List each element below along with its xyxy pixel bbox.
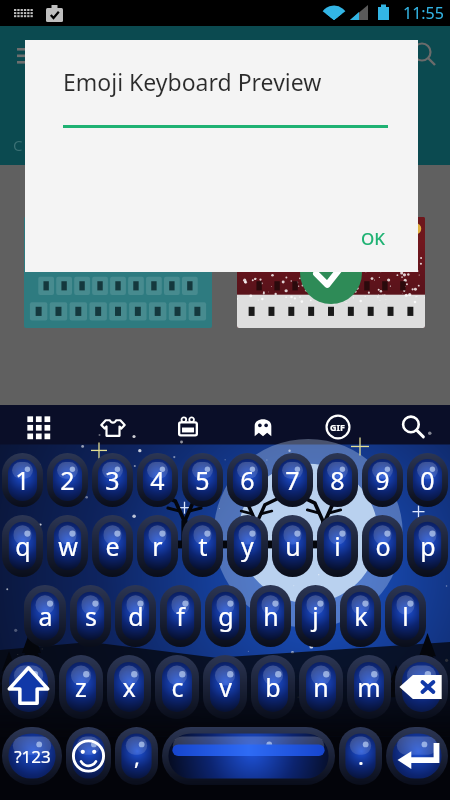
button[interactable]: Search	[410, 40, 440, 70]
staticText: 6	[240, 463, 255, 497]
staticText: g	[218, 599, 234, 633]
staticText: f	[176, 599, 185, 633]
button[interactable]: 6	[225, 449, 270, 511]
button[interactable]: m	[345, 651, 393, 723]
staticText: l	[402, 599, 409, 633]
button[interactable]: Emoji	[64, 723, 113, 789]
staticText: a	[38, 599, 53, 633]
button[interactable]: Shift	[0, 651, 57, 723]
staticText: j	[312, 599, 319, 633]
button[interactable]	[237, 217, 425, 328]
staticText: q	[15, 529, 31, 563]
staticText: C	[13, 135, 23, 155]
button[interactable]: ,	[113, 723, 160, 789]
staticText: x	[122, 670, 136, 704]
button[interactable]	[24, 217, 212, 328]
staticText: h	[263, 599, 279, 633]
staticText: 1	[15, 463, 30, 497]
staticText: 5	[195, 463, 210, 497]
button[interactable]: b	[249, 651, 297, 723]
button[interactable]: l	[383, 581, 428, 651]
button[interactable]: 5	[180, 449, 225, 511]
staticText: t	[198, 529, 208, 563]
staticText: 8	[330, 463, 345, 497]
staticText: o	[375, 529, 391, 563]
staticText: ,	[134, 741, 140, 771]
button[interactable]: d	[113, 581, 158, 651]
button[interactable]: j	[293, 581, 338, 651]
button[interactable]: 7	[270, 449, 315, 511]
button[interactable]: f	[158, 581, 203, 651]
staticText: 7	[285, 463, 300, 497]
staticText: v	[219, 670, 232, 704]
button[interactable]: Stickers	[225, 405, 300, 449]
button[interactable]: 2	[45, 449, 90, 511]
staticText: GIF	[330, 421, 345, 433]
button[interactable]: ?123	[0, 723, 64, 789]
button[interactable]: k	[338, 581, 383, 651]
staticText: 4	[150, 463, 165, 497]
button[interactable]: h	[248, 581, 293, 651]
button[interactable]: y	[225, 511, 270, 581]
button[interactable]: c	[153, 651, 201, 723]
button[interactable]: v	[201, 651, 249, 723]
button[interactable]: x	[105, 651, 153, 723]
staticText: OK	[361, 227, 386, 250]
button[interactable]: 0	[405, 449, 450, 511]
staticText: ?123	[14, 745, 51, 768]
button[interactable]: Apps	[0, 405, 75, 449]
button[interactable]: GIF	[300, 405, 375, 449]
staticText: Emoji Keyboard Preview	[63, 66, 322, 97]
button[interactable]: r	[135, 511, 180, 581]
button[interactable]: g	[203, 581, 248, 651]
button[interactable]: Themes	[75, 405, 150, 449]
staticText: k	[354, 599, 368, 633]
staticText: 3	[105, 463, 120, 497]
button[interactable]: q	[0, 511, 45, 581]
staticText: .	[358, 741, 364, 771]
button[interactable]: p	[405, 511, 450, 581]
staticText: d	[128, 599, 144, 633]
button[interactable]: Enter	[384, 723, 450, 789]
staticText: c	[171, 670, 184, 704]
staticText: m	[357, 670, 381, 704]
staticText: u	[285, 529, 301, 563]
button[interactable]: z	[57, 651, 105, 723]
staticText: b	[265, 670, 281, 704]
button[interactable]: 9	[360, 449, 405, 511]
button[interactable]: w	[45, 511, 90, 581]
button[interactable]: a	[22, 581, 68, 651]
staticText: 9	[375, 463, 390, 497]
button[interactable]: s	[68, 581, 113, 651]
staticText: s	[85, 599, 97, 633]
button[interactable]: Menu	[14, 42, 40, 68]
button[interactable]: n	[297, 651, 345, 723]
button[interactable]: u	[270, 511, 315, 581]
button[interactable]: 4	[135, 449, 180, 511]
staticText: w	[58, 529, 78, 563]
staticText: r	[152, 529, 163, 563]
button[interactable]: Space	[160, 723, 337, 789]
button[interactable]: t	[180, 511, 225, 581]
button[interactable]: .	[337, 723, 384, 789]
button[interactable]: o	[360, 511, 405, 581]
button[interactable]: Ads	[150, 405, 225, 449]
staticText: z	[75, 670, 87, 704]
button[interactable]: 8	[315, 449, 360, 511]
staticText: 2	[60, 463, 75, 497]
button[interactable]: i	[315, 511, 360, 581]
button[interactable]: 1	[0, 449, 45, 511]
staticText: 11:55	[403, 2, 444, 24]
button[interactable]: Backspace	[393, 651, 450, 723]
staticText: p	[420, 529, 436, 563]
button[interactable]: 3	[90, 449, 135, 511]
button[interactable]: OK	[349, 219, 398, 258]
staticText: 0	[420, 463, 435, 497]
staticText: e	[105, 529, 120, 563]
button[interactable]: Search	[375, 405, 450, 449]
staticText: y	[241, 529, 254, 563]
staticText: n	[313, 670, 329, 704]
staticText: i	[334, 529, 341, 563]
button[interactable]: e	[90, 511, 135, 581]
